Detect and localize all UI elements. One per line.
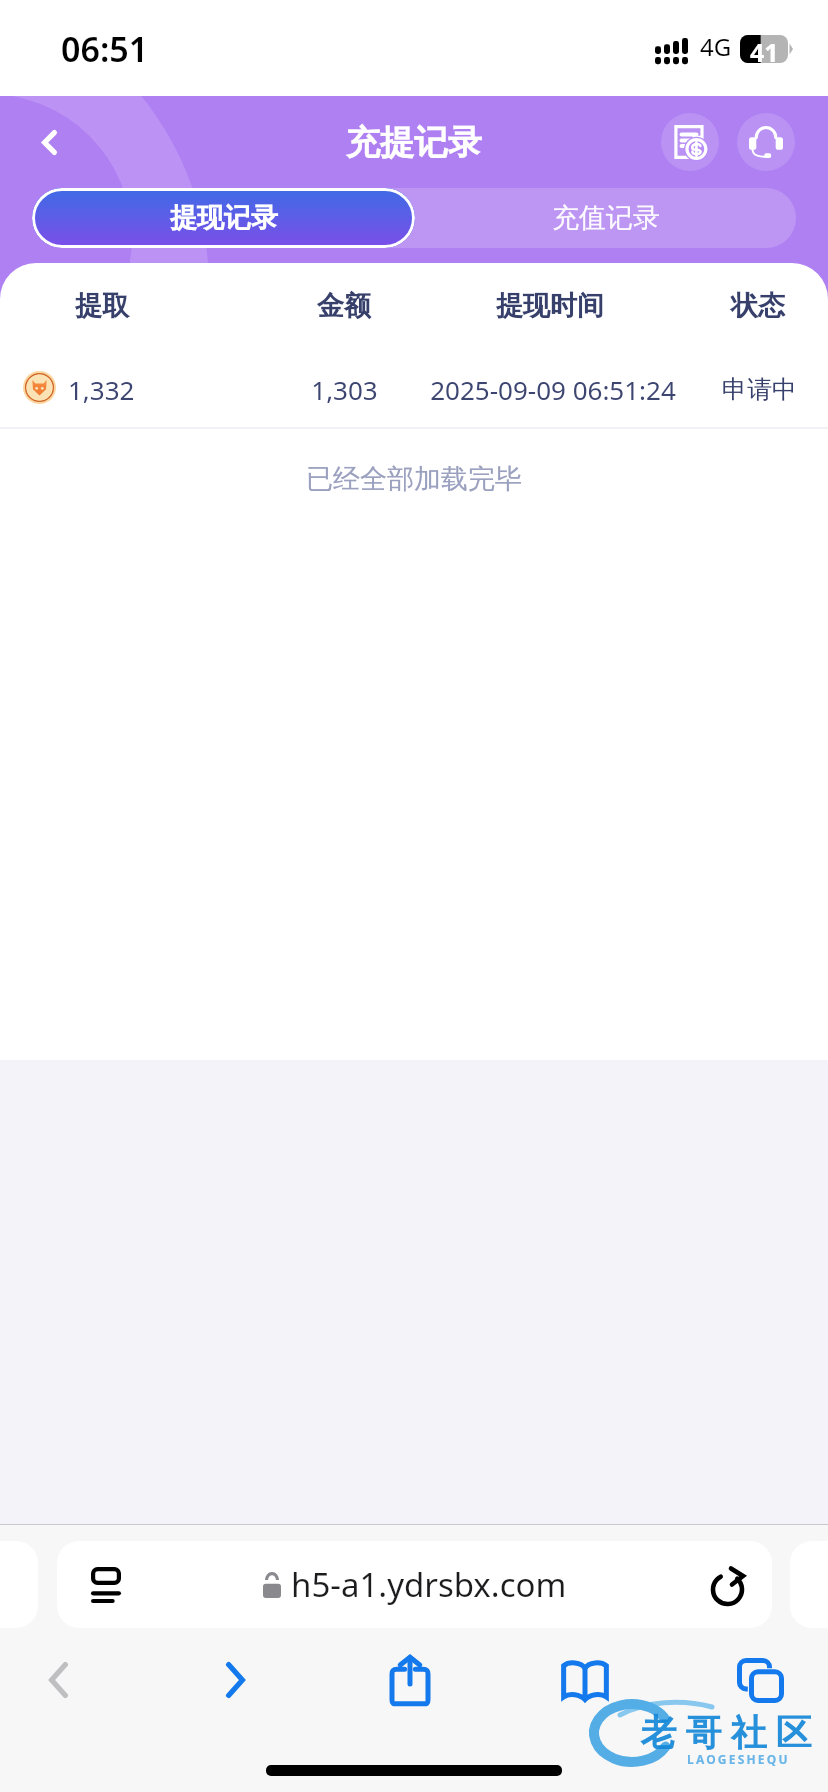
button[interactable]: Tabs xyxy=(708,1638,812,1722)
staticText: 1,332 xyxy=(68,372,135,407)
button[interactable] xyxy=(0,356,828,422)
staticText: 提取 xyxy=(75,289,129,323)
button[interactable]: Reload xyxy=(700,1557,756,1613)
button[interactable]: Page settings xyxy=(78,1557,134,1613)
button[interactable]: h5-a1.ydrsbx.com xyxy=(57,1541,772,1628)
staticText: 金额 xyxy=(317,289,371,323)
staticText: 提现记录 xyxy=(170,201,278,235)
staticText: h5-a1.ydrsbx.com xyxy=(291,1562,567,1607)
staticText: 1,303 xyxy=(311,372,378,407)
button[interactable]: 充值记录 xyxy=(415,188,796,248)
button[interactable]: Back xyxy=(6,1638,110,1722)
staticText: 充提记录 xyxy=(346,121,482,164)
staticText: 提现时间 xyxy=(496,289,604,323)
staticText: 申请中 xyxy=(722,374,797,405)
button[interactable]: Back xyxy=(20,113,78,171)
staticText: 已经全部加载完毕 xyxy=(306,462,522,496)
button[interactable]: Bill records xyxy=(661,113,719,171)
button[interactable]: Share xyxy=(358,1638,462,1722)
staticText: 2025-09-09 06:51:24 xyxy=(430,372,676,407)
staticText: 状态 xyxy=(731,289,785,323)
button[interactable]: Customer service xyxy=(737,113,795,171)
staticText: 4G xyxy=(700,30,732,63)
staticText: 充值记录 xyxy=(552,201,660,235)
staticText: 老哥社区 xyxy=(636,1710,816,1755)
staticText: 41 xyxy=(750,35,779,63)
button[interactable]: Forward xyxy=(183,1638,287,1722)
button[interactable]: 提现记录 xyxy=(32,188,415,248)
staticText: 06:51 xyxy=(61,26,149,72)
button[interactable]: Bookmarks xyxy=(533,1638,637,1722)
staticText: LAOGESHEQU xyxy=(687,1751,790,1767)
